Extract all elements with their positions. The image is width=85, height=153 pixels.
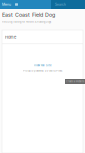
staticText: Field Dog Training For Pointers & Flushi… — [2, 20, 51, 23]
staticText: Search — [55, 3, 66, 6]
staticText: Create a website — [66, 80, 84, 83]
button[interactable]: Home — [2, 30, 83, 43]
staticText: East Coast Field Dog — [2, 11, 55, 18]
button[interactable]: Search — [51, 0, 85, 9]
button[interactable]: Menu — [0, 0, 13, 9]
button[interactable]: View Full Site — [0, 64, 85, 67]
button[interactable]: Create a website — [65, 79, 85, 84]
staticText: Menu — [2, 2, 11, 7]
button[interactable]: Open menu — [13, 0, 20, 9]
staticText: Home — [5, 35, 16, 40]
staticText: View Full Site — [34, 64, 51, 67]
staticText: Proudly powered by WordPress — [23, 69, 62, 72]
